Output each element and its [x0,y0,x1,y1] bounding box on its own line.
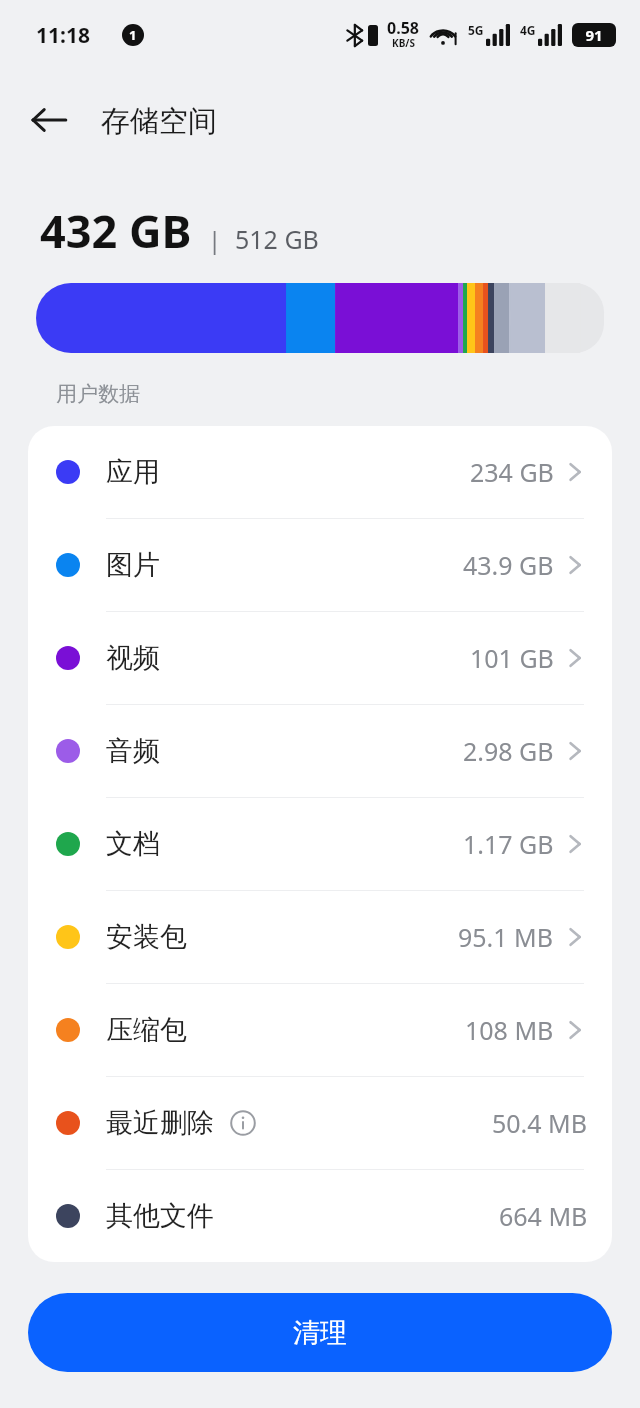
staticText: 文档 [106,827,160,861]
staticText: 用户数据 [56,381,140,407]
staticText: 664 MB [499,1199,588,1233]
staticText: 0.58 [387,17,419,39]
staticText: 图片 [106,548,160,582]
staticText: 安装包 [106,920,187,954]
button[interactable]: 音频 [28,705,612,797]
button[interactable]: 安装包 [28,891,612,983]
staticText: 234 GB [470,455,554,489]
staticText: 应用 [106,455,160,489]
staticText: 5G [468,22,484,38]
staticText: 101 GB [470,641,554,675]
button[interactable]: 应用 [28,426,612,518]
button[interactable]: Back [18,89,80,151]
staticText: 音频 [106,734,160,768]
staticText: 最近删除 [106,1106,214,1140]
staticText: 1.17 GB [463,827,554,861]
staticText: 50.4 MB [492,1106,588,1140]
staticText: | [208,223,222,256]
staticText: 95.1 MB [458,920,554,954]
staticText: 43.9 GB [463,548,554,582]
button[interactable]: 文档 [28,798,612,890]
button[interactable]: 图片 [28,519,612,611]
staticText: 其他文件 [106,1199,214,1233]
staticText: 432 GB [40,200,192,261]
staticText: 2.98 GB [463,734,554,768]
button[interactable]: 其他文件 [28,1170,612,1262]
button[interactable]: 视频 [28,612,612,704]
staticText: 清理 [293,1316,347,1350]
staticText: 4G [520,22,536,38]
staticText: KB/S [392,36,415,50]
staticText: 512 GB [235,222,319,256]
staticText: 11:18 [36,21,90,50]
staticText: 1 [129,26,137,44]
button[interactable]: 压缩包 [28,984,612,1076]
staticText: 存储空间 [101,103,217,140]
button[interactable]: 清理 [28,1293,612,1372]
staticText: 91 [585,25,603,45]
staticText: 视频 [106,641,160,675]
staticText: 压缩包 [106,1013,187,1047]
button[interactable]: 最近删除 [28,1077,612,1169]
staticText: 108 MB [465,1013,554,1047]
button[interactable]: More info [229,1109,257,1137]
